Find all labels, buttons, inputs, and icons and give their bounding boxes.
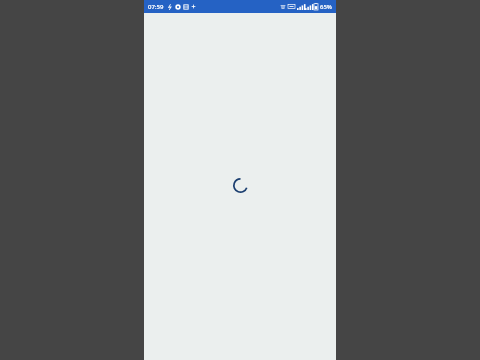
staticText: 07:59 — [148, 3, 164, 11]
staticText: 65% — [320, 3, 332, 11]
